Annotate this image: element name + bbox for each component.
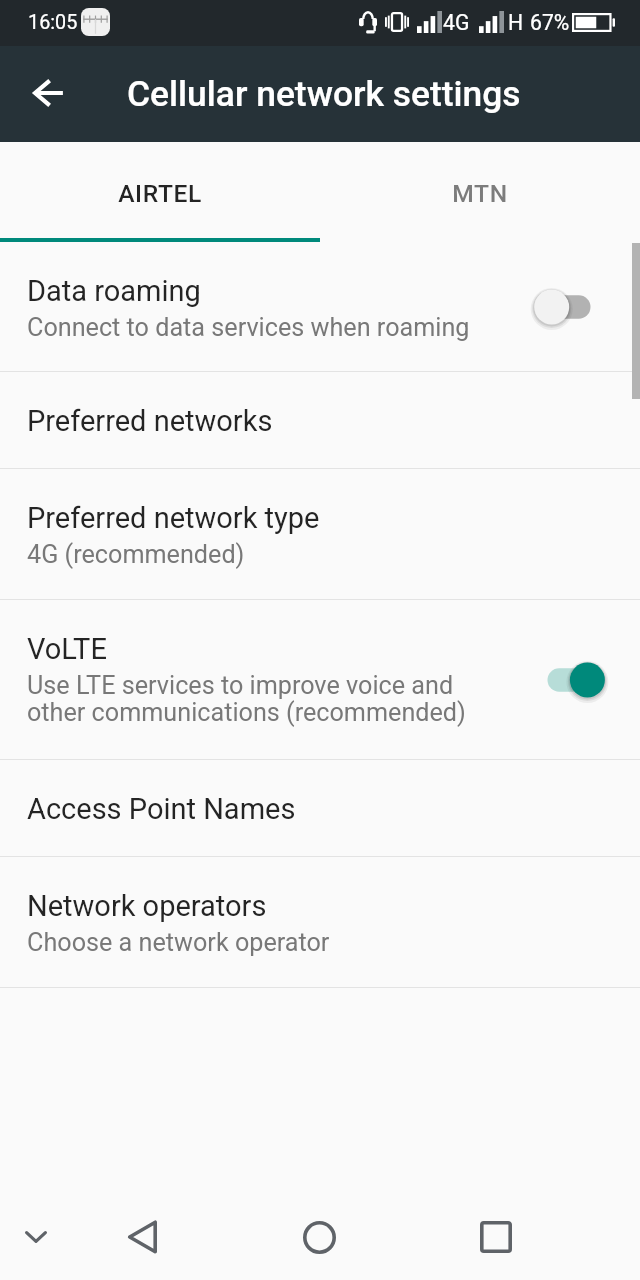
staticText: VoLTE: [27, 632, 107, 666]
staticText: AIRTEL: [118, 179, 202, 208]
button[interactable]: Switch on: [544, 656, 600, 704]
button[interactable]: Preferred network type: [0, 469, 640, 599]
staticText: 16:05: [28, 11, 78, 34]
button[interactable]: Data roaming: [0, 242, 640, 371]
button[interactable]: Hide keyboard: [0, 1191, 84, 1280]
staticText: H: [508, 10, 524, 35]
staticText: Access Point Names: [27, 792, 296, 826]
button[interactable]: Access Point Names: [0, 760, 640, 856]
button[interactable]: VoLTE: [0, 600, 640, 759]
button[interactable]: Home: [270, 1191, 368, 1280]
button[interactable]: AIRTEL: [0, 142, 320, 242]
button[interactable]: Switch off: [544, 283, 600, 331]
button[interactable]: Network operators: [0, 857, 640, 987]
staticText: 4G (recommended): [27, 540, 245, 570]
button[interactable]: MTN: [320, 142, 640, 242]
staticText: Preferred networks: [27, 404, 273, 438]
button[interactable]: Back: [93, 1191, 191, 1280]
button[interactable]: Back: [9, 53, 89, 133]
staticText: Choose a network operator: [27, 928, 330, 958]
staticText: 4G: [443, 10, 470, 35]
staticText: Network operators: [27, 889, 267, 923]
staticText: Data roaming: [27, 274, 201, 308]
staticText: MTN: [452, 179, 508, 208]
button[interactable]: Recents: [447, 1191, 545, 1280]
staticText: Use LTE services to improve voice and: [27, 671, 454, 701]
staticText: other communications (recommended): [27, 698, 466, 728]
staticText: Preferred network type: [27, 501, 320, 535]
staticText: Cellular network settings: [127, 73, 521, 114]
staticText: Connect to data services when roaming: [27, 313, 470, 343]
button[interactable]: Preferred networks: [0, 372, 640, 468]
staticText: 67%: [530, 10, 570, 35]
